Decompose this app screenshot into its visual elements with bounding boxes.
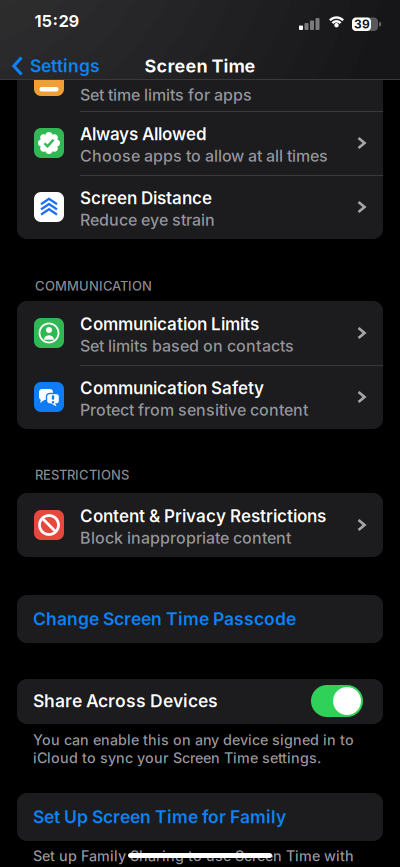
button[interactable]: Screen Distance [17, 175, 383, 239]
staticText: Set up Family Sharing to use Screen Time… [33, 847, 354, 865]
staticText: Communication Safety [80, 378, 264, 398]
staticText: Always Allowed [80, 124, 207, 144]
staticText: Choose apps to allow at all times [80, 146, 328, 166]
staticText: Set limits based on contacts [80, 336, 294, 356]
staticText: 15:29 [34, 11, 79, 31]
button[interactable]: Change Screen Time Passcode [17, 595, 383, 643]
staticText: Reduce eye strain [80, 210, 215, 230]
staticText: RESTRICTIONS [35, 467, 129, 483]
staticText: Settings [30, 55, 100, 77]
staticText: Screen Distance [80, 188, 212, 208]
button[interactable]: Content & Privacy Restrictions [17, 493, 383, 557]
staticText: Change Screen Time Passcode [33, 608, 296, 630]
staticText: Communication Limits [80, 314, 259, 334]
button[interactable]: Back to Settings [0, 0, 110, 80]
button[interactable]: Communication Safety [17, 365, 383, 429]
staticText: Protect from sensitive content [80, 400, 308, 420]
staticText: Set Up Screen Time for Family [33, 806, 286, 828]
staticText: Set time limits for apps [80, 85, 252, 105]
button[interactable]: Share Across Devices [311, 685, 363, 717]
staticText: Screen Time [144, 55, 255, 77]
staticText: Content & Privacy Restrictions [80, 506, 326, 526]
staticText: You can enable this on any device signed… [33, 731, 354, 749]
button[interactable]: Always Allowed [17, 111, 383, 175]
button[interactable]: Set Up Screen Time for Family [17, 793, 383, 841]
button[interactable]: Communication Limits [17, 301, 383, 365]
staticText: Block inappropriate content [80, 528, 291, 548]
staticText: Share Across Devices [33, 690, 218, 712]
staticText: iCloud to sync your Screen Time settings… [33, 749, 321, 767]
staticText: COMMUNICATION [35, 278, 152, 294]
staticText: 39 [354, 17, 370, 31]
